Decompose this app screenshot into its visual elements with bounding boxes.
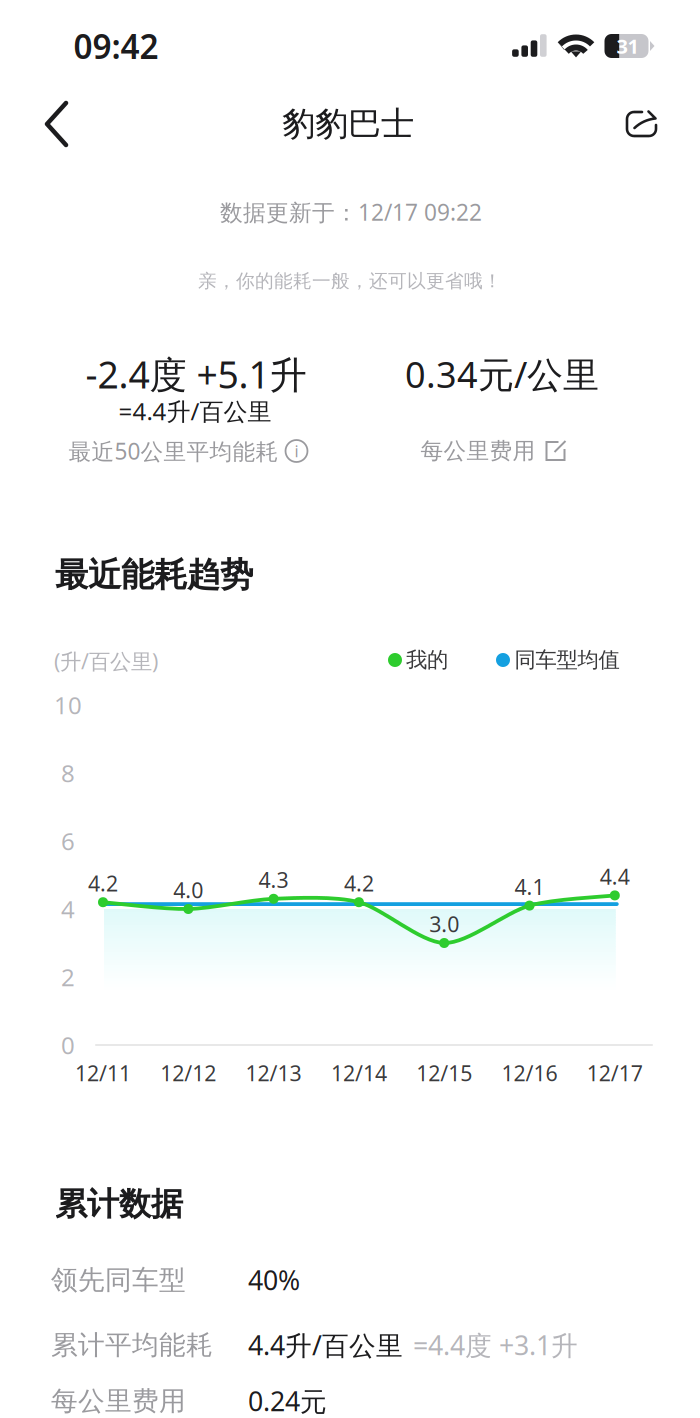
staticText: 4.0 xyxy=(173,876,203,904)
staticText: 累计数据 xyxy=(55,1184,183,1224)
staticText: 31 xyxy=(616,33,638,59)
staticText: 0 xyxy=(61,1029,75,1061)
staticText: 12/14 xyxy=(331,1059,387,1087)
staticText: i xyxy=(294,440,298,462)
staticText: 0.24元 xyxy=(248,1383,327,1418)
staticText: 4.4升/百公里 xyxy=(248,1327,403,1363)
staticText: =4.4升/百公里 xyxy=(118,395,271,427)
staticText: 09:42 xyxy=(73,24,158,68)
staticText: 每公里费用 xyxy=(51,1385,186,1417)
staticText: 8 xyxy=(61,757,75,789)
staticText: 数据更新于：12/17 09:22 xyxy=(220,197,482,227)
button[interactable]: Share xyxy=(605,88,677,160)
staticText: 每公里费用 xyxy=(420,437,535,465)
staticText: 领先同车型 xyxy=(51,1264,186,1296)
staticText: 4.3 xyxy=(259,866,289,894)
button[interactable]: 最近50公里平均能耗 xyxy=(68,436,307,466)
staticText: 同车型均值 xyxy=(514,647,619,673)
staticText: 累计平均能耗 xyxy=(51,1329,213,1361)
staticText: 12/16 xyxy=(501,1059,557,1087)
button[interactable]: 每公里费用 xyxy=(420,437,567,465)
staticText: 豹豹巴士 xyxy=(282,103,414,144)
staticText: 4.2 xyxy=(88,869,118,897)
staticText: 最近50公里平均能耗 xyxy=(68,436,278,466)
staticText: 12/11 xyxy=(75,1059,131,1087)
staticText: 4.4 xyxy=(600,862,630,890)
button[interactable]: Back xyxy=(21,88,93,160)
staticText: 12/12 xyxy=(160,1059,216,1087)
staticText: 12/15 xyxy=(416,1059,472,1087)
staticText: 我的 xyxy=(406,647,448,673)
staticText: 12/13 xyxy=(246,1059,302,1087)
staticText: =4.4度 +3.1升 xyxy=(413,1327,578,1363)
staticText: 4 xyxy=(61,893,75,925)
staticText: 6 xyxy=(61,825,75,857)
staticText: 最近能耗趋势 xyxy=(55,554,253,595)
staticText: 0.34元/公里 xyxy=(405,350,599,398)
staticText: 12/17 xyxy=(587,1059,643,1087)
staticText: 40% xyxy=(248,1262,300,1298)
staticText: (升/百公里) xyxy=(54,647,158,675)
staticText: 2 xyxy=(61,961,75,993)
staticText: 3.0 xyxy=(429,910,459,938)
staticText: 4.2 xyxy=(344,869,374,897)
staticText: -2.4度 +5.1升 xyxy=(85,349,306,399)
staticText: 亲，你的能耗一般，还可以更省哦！ xyxy=(198,269,502,292)
staticText: 10 xyxy=(54,689,82,721)
staticText: 4.1 xyxy=(514,872,544,901)
